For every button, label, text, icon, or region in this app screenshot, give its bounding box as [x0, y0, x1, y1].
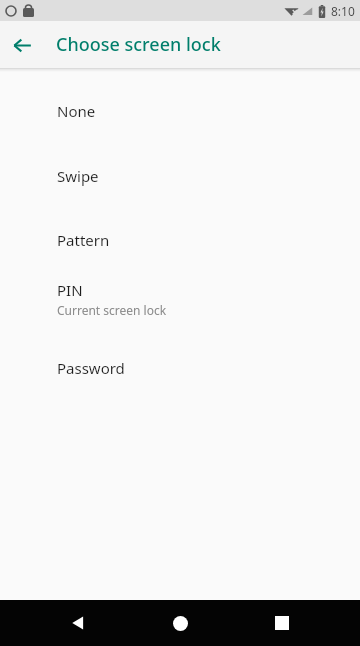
- button[interactable]: Navigate up: [5, 28, 39, 62]
- staticText: 8:10: [331, 3, 355, 19]
- button[interactable]: Swipe: [0, 152, 360, 200]
- button[interactable]: Home: [158, 601, 202, 645]
- button[interactable]: Back: [56, 601, 100, 645]
- button[interactable]: Recent apps: [260, 601, 304, 645]
- staticText: Swipe: [57, 166, 99, 186]
- button[interactable]: PIN: [0, 272, 360, 326]
- button[interactable]: Password: [0, 344, 360, 392]
- button[interactable]: None: [0, 87, 360, 135]
- staticText: Pattern: [57, 230, 110, 250]
- staticText: Password: [57, 358, 125, 378]
- button[interactable]: Pattern: [0, 216, 360, 264]
- staticText: Choose screen lock: [56, 32, 221, 57]
- staticText: PIN: [57, 280, 83, 300]
- staticText: None: [57, 101, 96, 121]
- staticText: Current screen lock: [57, 302, 167, 318]
